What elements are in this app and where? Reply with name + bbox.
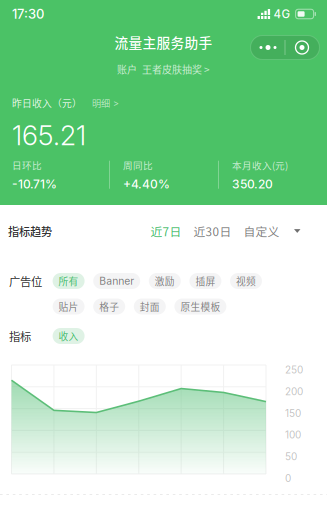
- staticText: 明细: [92, 96, 110, 110]
- button[interactable]: 近7日: [144, 218, 187, 244]
- staticText: 200: [285, 385, 303, 398]
- staticText: 50: [285, 451, 297, 463]
- staticText: 250: [285, 364, 303, 376]
- button[interactable]: 昨日收入（元）: [12, 96, 119, 110]
- button[interactable]: 账户: [117, 62, 210, 76]
- staticText: 插屏: [195, 274, 215, 288]
- staticText: 收入: [59, 329, 79, 343]
- button[interactable]: 自定义: [237, 218, 300, 244]
- staticText: 近7日: [150, 222, 181, 240]
- button[interactable]: 封面: [134, 298, 166, 314]
- button[interactable]: 视频: [230, 273, 262, 289]
- staticText: 封面: [140, 299, 160, 313]
- button[interactable]: 插屏: [189, 273, 221, 289]
- staticText: 165.21: [12, 119, 86, 152]
- staticText: 4G: [274, 7, 291, 21]
- button[interactable]: 收入: [53, 328, 85, 344]
- staticText: 周同比: [123, 158, 153, 172]
- button[interactable]: Banner: [93, 273, 140, 289]
- button[interactable]: 激励: [149, 273, 181, 289]
- staticText: 视频: [236, 274, 256, 288]
- button[interactable]: 格子: [93, 298, 125, 314]
- staticText: 本月收入(元): [232, 158, 288, 172]
- staticText: 格子: [99, 299, 119, 313]
- staticText: 流量主服务助手: [114, 32, 212, 52]
- staticText: 自定义: [243, 222, 279, 240]
- staticText: 激励: [155, 274, 175, 288]
- staticText: 指标: [9, 328, 31, 344]
- button[interactable]: 原生模板: [174, 298, 226, 314]
- staticText: 指标趋势: [8, 223, 52, 239]
- staticText: 150: [285, 407, 301, 419]
- button[interactable]: 近30日: [187, 218, 237, 244]
- staticText: >: [113, 98, 119, 109]
- staticText: 100: [285, 429, 301, 441]
- staticText: +4.40%: [123, 177, 170, 191]
- staticText: 近30日: [193, 222, 231, 240]
- staticText: 原生模板: [180, 299, 220, 313]
- staticText: 贴片: [59, 299, 79, 313]
- staticText: 广告位: [9, 273, 42, 289]
- staticText: 350.20: [232, 177, 273, 191]
- button[interactable]: Close mini program: [285, 35, 318, 59]
- staticText: 昨日收入（元）: [12, 96, 82, 110]
- staticText: 日环比: [12, 158, 42, 172]
- staticText: 账户: [117, 62, 137, 76]
- button[interactable]: 贴片: [53, 298, 85, 314]
- staticText: -10.71%: [12, 177, 57, 191]
- staticText: 所有: [59, 274, 79, 288]
- staticText: 王者皮肤抽奖 >: [142, 62, 210, 76]
- staticText: 17:30: [12, 6, 44, 22]
- button[interactable]: 所有: [53, 273, 85, 289]
- button[interactable]: More options: [251, 35, 284, 59]
- staticText: Banner: [99, 275, 134, 287]
- staticText: 0: [285, 472, 291, 484]
